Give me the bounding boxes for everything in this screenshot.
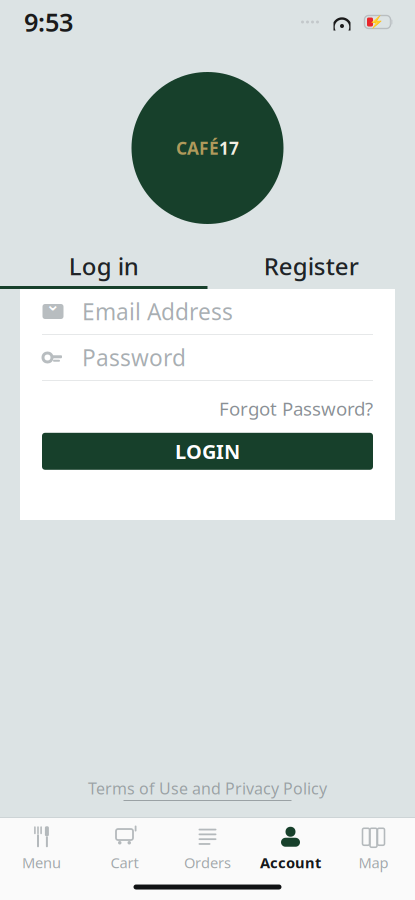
button[interactable]: ⌄ xyxy=(20,289,395,334)
staticText: ⚡ xyxy=(369,15,384,29)
staticText: 17 xyxy=(219,136,239,159)
button[interactable]: Register xyxy=(207,246,415,286)
staticText: ⌄ xyxy=(45,295,60,314)
button[interactable]: LOGIN xyxy=(42,433,373,470)
staticText: Account xyxy=(260,853,321,872)
staticText: Log in xyxy=(69,250,139,282)
staticText: Map xyxy=(358,853,388,872)
staticText: Register xyxy=(264,250,359,282)
button[interactable]: Forgot Password? xyxy=(219,388,373,429)
button[interactable]: Account xyxy=(249,820,332,878)
staticText: Email Address xyxy=(82,296,233,326)
button[interactable]: Orders xyxy=(166,820,249,878)
staticText: 9:53 xyxy=(24,5,73,39)
button[interactable]: Map xyxy=(332,820,415,878)
staticText: Cart xyxy=(110,853,138,872)
staticText: Terms of Use and Privacy Policy xyxy=(88,778,327,799)
button[interactable]: Password xyxy=(20,335,395,380)
staticText: Password xyxy=(82,342,186,372)
button[interactable]: Log in xyxy=(0,246,207,286)
button[interactable]: Terms of Use and Privacy Policy xyxy=(88,774,327,805)
staticText: Forgot Password? xyxy=(219,396,373,421)
staticText: Orders xyxy=(184,853,231,872)
button[interactable]: Cart xyxy=(83,820,166,878)
staticText: LOGIN xyxy=(175,438,240,465)
staticText: CAFÉ xyxy=(176,136,219,159)
button[interactable]: Menu xyxy=(0,820,83,878)
staticText: Menu xyxy=(22,853,61,872)
